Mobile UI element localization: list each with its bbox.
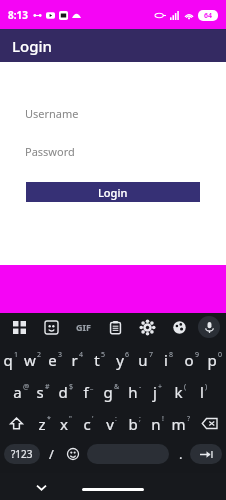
button[interactable]: Enter	[190, 444, 222, 464]
button[interactable]: k	[169, 377, 192, 406]
staticText: #	[45, 382, 50, 392]
staticText: &	[114, 382, 120, 392]
button[interactable]: g	[100, 377, 123, 406]
staticText: '	[92, 414, 94, 424]
button[interactable]: e	[44, 345, 66, 374]
staticText: -	[139, 382, 142, 392]
staticText: "	[69, 414, 72, 424]
staticText: v	[106, 414, 114, 434]
staticText: .	[179, 445, 183, 463]
button[interactable]: /	[40, 443, 62, 465]
button[interactable]: Shift	[0, 409, 33, 438]
button[interactable]: n	[146, 409, 169, 438]
button[interactable]: t	[88, 345, 111, 374]
button[interactable]: Themes	[166, 314, 192, 340]
staticText: l	[200, 382, 204, 402]
staticText: 3	[58, 350, 63, 360]
button[interactable]: s	[32, 377, 54, 406]
button[interactable]: x	[55, 409, 77, 438]
staticText: +	[158, 382, 163, 392]
staticText: Username	[25, 106, 79, 121]
staticText: Password	[25, 144, 75, 159]
button[interactable]: r	[66, 345, 88, 374]
button[interactable]: d	[54, 377, 77, 406]
staticText: z	[38, 414, 46, 434]
button[interactable]: Space	[87, 444, 169, 464]
button[interactable]: Username	[25, 100, 226, 126]
staticText: i	[164, 350, 168, 370]
staticText: q	[3, 350, 13, 370]
button[interactable]: Stickers	[38, 314, 64, 340]
staticText: a	[13, 382, 22, 402]
staticText: g	[103, 382, 113, 402]
staticText: Login	[98, 185, 128, 200]
staticText: ;	[139, 414, 141, 424]
button[interactable]: a	[10, 377, 32, 406]
button[interactable]: Clipboard	[102, 314, 128, 340]
staticText: c	[83, 414, 91, 434]
button[interactable]: ?123	[4, 444, 40, 464]
button[interactable]: i	[157, 345, 180, 374]
staticText: 8	[169, 350, 174, 360]
button[interactable]: o	[180, 345, 203, 374]
staticText: 0	[218, 350, 223, 360]
staticText: 5	[101, 350, 106, 360]
staticText: e	[48, 350, 57, 370]
button[interactable]: j	[146, 377, 169, 406]
staticText: 8:13	[8, 8, 28, 22]
staticText: x	[60, 414, 68, 434]
button[interactable]: Password	[25, 138, 226, 164]
button[interactable]: Emoji	[62, 443, 84, 465]
button[interactable]: v	[100, 409, 123, 438]
button[interactable]: q	[0, 345, 22, 374]
staticText: @	[23, 382, 30, 392]
button[interactable]: y	[111, 345, 134, 374]
staticText: j	[153, 382, 157, 402]
button[interactable]: z	[33, 409, 55, 438]
button[interactable]: Login	[26, 182, 200, 202]
button[interactable]: u	[134, 345, 157, 374]
button[interactable]: m	[169, 409, 192, 438]
staticText: d	[58, 382, 68, 402]
staticText: b	[128, 414, 138, 434]
button[interactable]: Apps	[6, 314, 32, 340]
button[interactable]: .	[172, 443, 190, 465]
staticText: ?123	[11, 447, 33, 461]
button[interactable]: Hide keyboard	[32, 478, 50, 496]
staticText: Login	[12, 36, 52, 56]
button[interactable]: p	[203, 345, 226, 374]
button[interactable]: Settings	[134, 314, 160, 340]
button[interactable]: GIF	[70, 314, 96, 340]
staticText: n	[151, 414, 161, 434]
staticText: 1	[14, 350, 19, 360]
staticText: 9	[195, 350, 200, 360]
button[interactable]: w	[22, 345, 44, 374]
button[interactable]: c	[77, 409, 100, 438]
staticText: p	[207, 350, 217, 370]
staticText: $	[69, 382, 74, 392]
staticText: k	[174, 382, 183, 402]
button[interactable]: Voice input	[198, 316, 220, 338]
staticText: h	[128, 382, 138, 402]
staticText: GIF	[76, 321, 91, 333]
staticText: _	[90, 382, 94, 392]
staticText: y	[116, 350, 124, 370]
button[interactable]: h	[123, 377, 146, 406]
button[interactable]: Backspace	[192, 409, 226, 438]
button[interactable]: l	[192, 377, 215, 406]
staticText: s	[36, 382, 44, 402]
staticText: 64	[204, 11, 213, 21]
staticText: m	[171, 414, 186, 434]
staticText: r	[71, 350, 78, 370]
staticText: /	[49, 445, 54, 463]
staticText: u	[138, 350, 148, 370]
staticText: *	[47, 414, 51, 424]
staticText: )	[205, 382, 208, 392]
staticText: t	[94, 350, 100, 370]
staticText: f	[83, 382, 89, 402]
staticText: ?	[187, 414, 191, 424]
button[interactable]: f	[77, 377, 100, 406]
button[interactable]: b	[123, 409, 146, 438]
staticText: 4	[79, 350, 84, 360]
staticText: o	[184, 350, 194, 370]
